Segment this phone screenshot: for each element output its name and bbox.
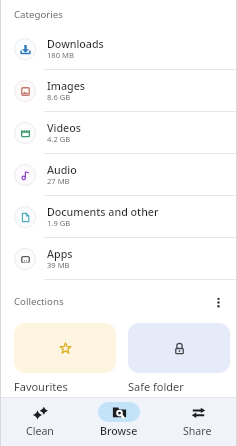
button[interactable]: Documents and other <box>0 196 237 238</box>
staticText: Clean <box>26 424 54 438</box>
staticText: Images <box>47 79 85 94</box>
staticText: Videos <box>47 121 81 136</box>
button[interactable]: Audio <box>0 154 237 196</box>
button[interactable]: Images <box>0 70 237 112</box>
staticText: Favourites <box>14 379 68 394</box>
staticText: Safe folder <box>128 379 184 394</box>
staticText: Audio <box>47 163 77 178</box>
button[interactable]: Favourites <box>14 323 116 394</box>
staticText: 27 MB <box>47 176 70 186</box>
button[interactable]: Apps <box>0 238 237 280</box>
staticText: 1.9 GB <box>47 218 71 228</box>
button[interactable]: Clean <box>0 398 79 438</box>
button[interactable]: Downloads <box>0 28 237 70</box>
button[interactable]: More options <box>208 292 228 312</box>
button[interactable]: Videos <box>0 112 237 154</box>
staticText: 180 MB <box>47 50 74 60</box>
button[interactable]: Share <box>158 398 237 438</box>
staticText: Documents and other <box>47 205 159 220</box>
staticText: Collections <box>14 295 64 308</box>
button[interactable]: Browse <box>79 398 158 438</box>
staticText: Share <box>183 424 212 438</box>
staticText: 8.6 GB <box>47 92 71 102</box>
button[interactable]: Safe folder <box>128 323 230 394</box>
staticText: Downloads <box>47 37 104 52</box>
staticText: 4.2 GB <box>47 134 71 144</box>
staticText: Browse <box>100 424 138 438</box>
staticText: Apps <box>47 247 73 262</box>
staticText: 39 MB <box>47 260 70 270</box>
staticText: Categories <box>14 8 63 21</box>
